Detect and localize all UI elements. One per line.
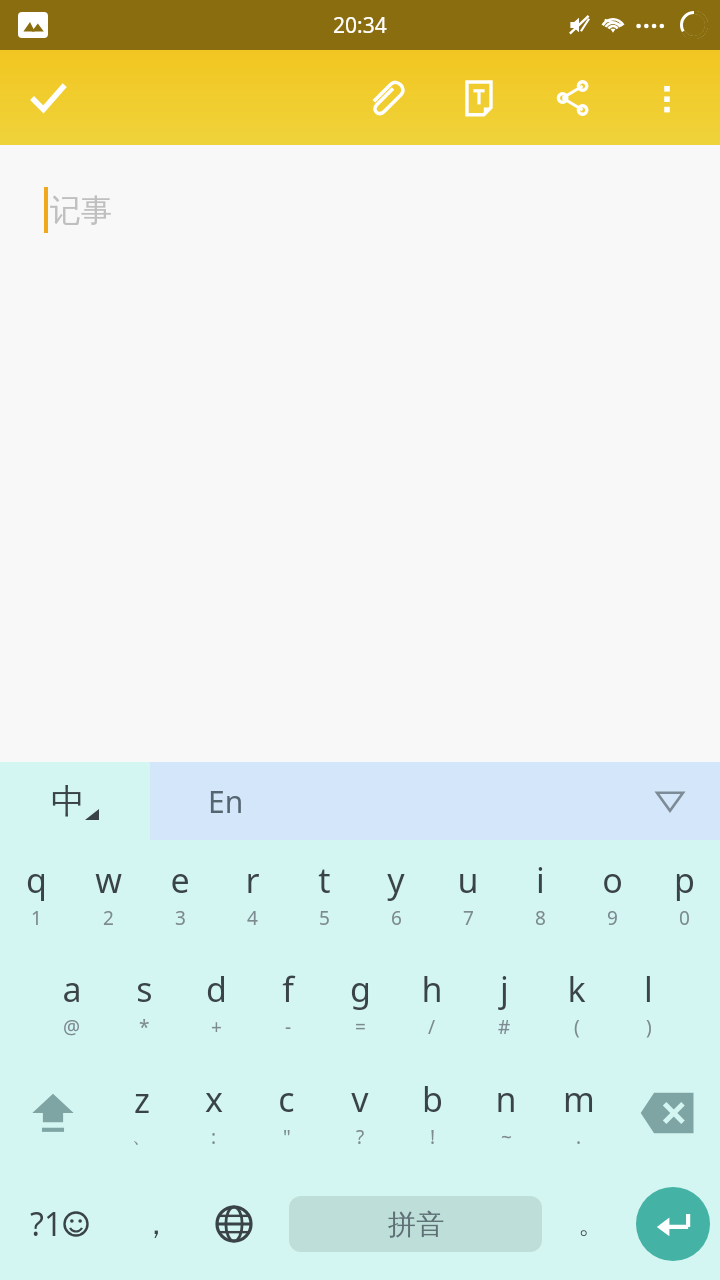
button[interactable]: 拼音 — [289, 1196, 542, 1252]
staticText: i — [536, 857, 545, 903]
staticText: 4 — [247, 905, 258, 931]
staticText: h — [421, 966, 443, 1012]
staticText: f — [282, 966, 294, 1012]
staticText: r — [245, 857, 260, 903]
button[interactable]: w — [72, 840, 144, 948]
staticText: k — [567, 966, 586, 1012]
button[interactable]: x — [177, 1058, 250, 1168]
button[interactable]: Backspace — [615, 1058, 720, 1168]
button[interactable]: v — [323, 1058, 396, 1168]
button[interactable]: q — [0, 840, 72, 948]
button[interactable]: k — [540, 948, 612, 1058]
button[interactable]: En — [150, 762, 720, 840]
button[interactable]: Text format — [432, 50, 526, 145]
staticText: t — [318, 857, 331, 903]
button[interactable]: u — [432, 840, 504, 948]
staticText: 9 — [607, 905, 618, 931]
staticText: g — [350, 966, 371, 1012]
staticText: * — [139, 1014, 150, 1040]
staticText: : — [211, 1124, 217, 1150]
button[interactable]: r — [216, 840, 288, 948]
staticText: 拼音 — [388, 1207, 444, 1242]
button[interactable]: Hide keyboard — [650, 781, 690, 821]
button[interactable]: Symbols and emoji — [0, 1168, 118, 1280]
staticText: 8 — [535, 905, 546, 931]
button[interactable]: g — [324, 948, 396, 1058]
button[interactable]: Switch Chinese input — [0, 762, 150, 840]
staticText: 0 — [679, 905, 690, 931]
staticText: En — [208, 781, 244, 822]
staticText: / — [428, 1014, 436, 1040]
staticText: ?1 — [30, 1202, 63, 1246]
button[interactable]: 。 — [556, 1168, 626, 1280]
staticText: 3 — [175, 905, 186, 931]
button[interactable]: More options — [620, 50, 714, 145]
button[interactable]: j — [468, 948, 540, 1058]
button[interactable]: c — [250, 1058, 323, 1168]
staticText: n — [495, 1076, 517, 1122]
staticText: 2 — [103, 905, 114, 931]
staticText: = — [355, 1014, 366, 1040]
staticText: d — [206, 966, 227, 1012]
button[interactable]: t — [288, 840, 360, 948]
staticText: 、 — [132, 1125, 151, 1149]
button[interactable]: p — [648, 840, 720, 948]
button[interactable]: e — [144, 840, 216, 948]
staticText: @ — [63, 1014, 81, 1040]
staticText: j — [500, 966, 509, 1012]
button[interactable]: Change language — [193, 1168, 275, 1280]
staticText: z — [134, 1077, 150, 1123]
staticText: . — [576, 1124, 582, 1150]
button[interactable]: ， — [118, 1168, 193, 1280]
staticText: " — [283, 1124, 291, 1150]
staticText: 记事 — [50, 191, 112, 230]
button[interactable]: Attach file — [338, 50, 432, 145]
button[interactable]: Save note — [16, 66, 80, 130]
button[interactable]: m — [542, 1058, 615, 1168]
button[interactable]: f — [252, 948, 324, 1058]
staticText: 20:34 — [333, 11, 387, 40]
staticText: - — [285, 1014, 292, 1040]
staticText: s — [136, 966, 153, 1012]
staticText: a — [62, 966, 82, 1012]
staticText: 。 — [578, 1208, 604, 1241]
button[interactable]: Enter — [626, 1168, 720, 1280]
staticText: y — [387, 857, 405, 903]
staticText: l — [644, 966, 653, 1012]
staticText: q — [26, 857, 47, 903]
staticText: # — [498, 1014, 511, 1040]
button[interactable]: a — [36, 948, 108, 1058]
staticText: 1 — [31, 905, 42, 931]
button[interactable]: d — [180, 948, 252, 1058]
staticText: ) — [646, 1014, 652, 1040]
staticText: p — [674, 857, 695, 903]
button[interactable]: l — [612, 948, 684, 1058]
button[interactable]: Shift — [0, 1058, 105, 1168]
staticText: v — [351, 1076, 369, 1122]
button[interactable]: h — [396, 948, 468, 1058]
staticText: e — [170, 857, 190, 903]
button[interactable]: y — [360, 840, 432, 948]
staticText: ~ — [501, 1124, 512, 1150]
staticText: x — [205, 1076, 223, 1122]
button[interactable]: s — [108, 948, 180, 1058]
staticText: c — [278, 1076, 295, 1122]
button[interactable]: o — [576, 840, 648, 948]
staticText: u — [457, 857, 479, 903]
staticText: 中 — [51, 780, 85, 823]
staticText: m — [563, 1076, 595, 1122]
staticText: o — [602, 857, 623, 903]
button[interactable]: i — [504, 840, 576, 948]
staticText: b — [422, 1076, 443, 1122]
staticText: 7 — [463, 905, 474, 931]
staticText: + — [211, 1014, 222, 1040]
button[interactable]: n — [469, 1058, 542, 1168]
staticText: 5 — [319, 905, 330, 931]
button[interactable]: z — [105, 1058, 177, 1168]
button[interactable]: Share — [526, 50, 620, 145]
staticText: w — [95, 857, 122, 903]
staticText: ? — [356, 1124, 365, 1150]
staticText: ( — [574, 1014, 580, 1040]
button[interactable]: b — [396, 1058, 469, 1168]
staticText: ， — [141, 1205, 171, 1243]
